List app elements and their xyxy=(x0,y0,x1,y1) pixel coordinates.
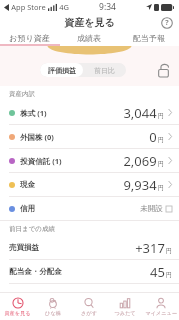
button[interactable]: さがす xyxy=(71,293,107,320)
staticText: つみたて xyxy=(114,310,136,317)
staticText: 配当金・分配金 xyxy=(9,267,62,276)
staticText: 資産内訳 xyxy=(9,90,35,98)
staticText: 成績表 xyxy=(77,33,101,43)
staticText: 資産を見る xyxy=(64,16,115,29)
staticText: 投資信託 (1) xyxy=(20,156,62,166)
staticText: 配当予報 xyxy=(133,33,165,43)
staticText: お預り資産 xyxy=(9,33,50,43)
staticText: さがす xyxy=(81,310,97,317)
staticText: 9,934 xyxy=(123,176,157,194)
button[interactable]: 成績表 xyxy=(59,31,119,44)
button[interactable]: マイメニュー xyxy=(143,293,179,320)
staticText: 資産を見る xyxy=(4,310,31,317)
button[interactable]: 評価損益 xyxy=(40,63,83,77)
staticText: 株式 (1) xyxy=(20,108,47,118)
staticText: 円 xyxy=(166,247,172,255)
staticText: 45 xyxy=(150,263,165,281)
button[interactable]: 外国株 (0) xyxy=(0,125,179,149)
staticText: 外国株 (0) xyxy=(20,132,54,142)
staticText: 円 xyxy=(158,160,164,168)
staticText: ひな株 xyxy=(45,310,61,317)
button[interactable]: ひな株 xyxy=(35,293,71,320)
staticText: 評価損益 xyxy=(48,66,76,75)
staticText: 9:34 xyxy=(99,1,116,13)
staticText: 2,069 xyxy=(123,152,157,170)
button[interactable]: 配当金・分配金 xyxy=(0,260,179,284)
staticText: 4G xyxy=(59,2,69,12)
staticText: 未開設 xyxy=(140,204,163,213)
button[interactable]: 売買損益 xyxy=(0,236,179,260)
staticText: 円 xyxy=(158,184,164,192)
staticText: 円 xyxy=(158,112,164,120)
staticText: ? xyxy=(165,18,169,28)
button[interactable]: 金額の表示・非表示 xyxy=(155,62,171,78)
button[interactable]: 株式 (1) xyxy=(0,101,179,125)
staticText: 円 xyxy=(166,271,172,279)
staticText: App Store xyxy=(11,2,46,12)
button[interactable]: ヘルプ xyxy=(161,17,173,29)
staticText: マイメニュー xyxy=(145,310,177,317)
staticText: 前日比 xyxy=(94,66,115,75)
button[interactable]: 前日比 xyxy=(83,63,126,77)
button[interactable]: 配当予報 xyxy=(119,31,179,44)
button[interactable]: 投資信託 (1) xyxy=(0,149,179,173)
staticText: 現金 xyxy=(20,180,35,189)
staticText: 0 xyxy=(149,128,157,146)
button[interactable]: つみたて xyxy=(107,293,143,320)
staticText: 円 xyxy=(158,136,164,144)
button[interactable]: お預り資産 xyxy=(0,31,59,44)
staticText: 信用 xyxy=(20,204,35,213)
staticText: 前日までの成績 xyxy=(9,225,55,233)
button[interactable]: 現金 xyxy=(0,173,179,197)
button[interactable]: 信用 xyxy=(0,197,179,221)
staticText: 売買損益 xyxy=(9,243,39,252)
staticText: 3,044 xyxy=(123,104,157,122)
staticText: +317 xyxy=(135,239,165,257)
button[interactable]: 資産を見る xyxy=(0,293,35,320)
